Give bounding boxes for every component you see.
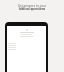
staticText: Get answers to your biblical questions	[0, 4, 64, 11]
